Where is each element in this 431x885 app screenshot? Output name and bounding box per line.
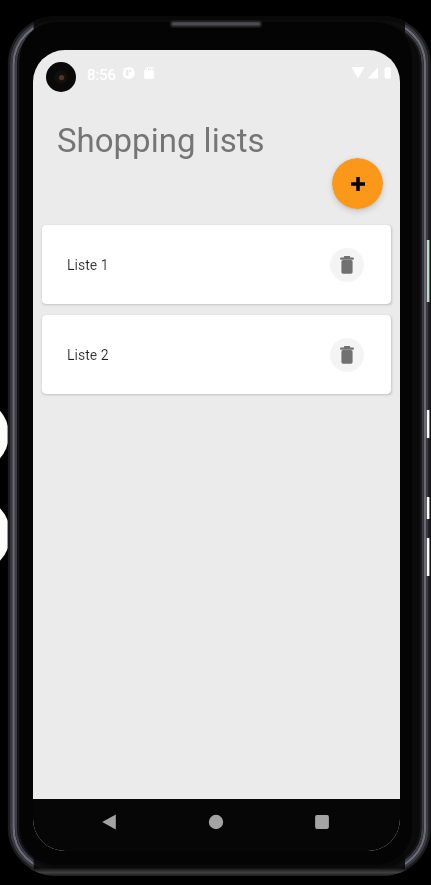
staticText: Liste 1 (67, 257, 109, 273)
button[interactable]: Liste 2 (42, 315, 391, 394)
button[interactable]: Home (200, 806, 232, 838)
button[interactable]: Delete (330, 248, 364, 282)
button[interactable]: Add list (332, 158, 383, 209)
button[interactable]: Delete (330, 338, 364, 372)
button[interactable]: Recents (306, 806, 338, 838)
button[interactable]: Liste 1 (42, 225, 391, 304)
button[interactable]: Back (93, 806, 125, 838)
staticText: Shopping lists (57, 121, 265, 160)
staticText: Liste 2 (67, 347, 109, 363)
staticText: 8:56 (87, 66, 116, 84)
